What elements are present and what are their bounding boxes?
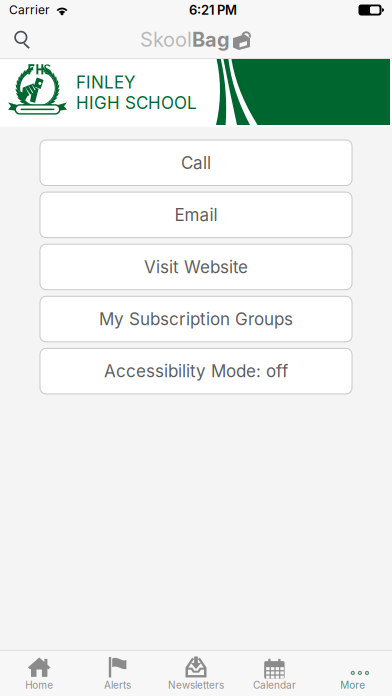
button[interactable]: Visit Website [40, 244, 352, 290]
staticText: Accessibility Mode: off [104, 361, 288, 381]
staticText: Newsletters [168, 679, 224, 691]
button[interactable]: Email [40, 192, 352, 238]
button[interactable]: More [314, 651, 392, 696]
staticText: Call [181, 152, 211, 173]
button[interactable]: Accessibility Mode: off [40, 348, 352, 394]
staticText: Skool [140, 27, 192, 52]
staticText: Alerts [104, 679, 131, 691]
staticText: Calendar [253, 679, 296, 691]
staticText: Visit Website [144, 257, 248, 277]
button[interactable]: Calendar [235, 651, 314, 696]
staticText: 6:21 PM [189, 2, 237, 18]
staticText: Email [174, 205, 217, 225]
staticText: Carrier [9, 3, 50, 17]
staticText: Home [25, 679, 53, 691]
button[interactable]: My Subscription Groups [40, 296, 352, 342]
button[interactable]: Search [0, 20, 44, 59]
staticText: HIGH SCHOOL [76, 93, 197, 113]
staticText: My Subscription Groups [99, 309, 293, 329]
button[interactable]: Newsletters [157, 651, 235, 696]
staticText: Bag [192, 27, 230, 52]
staticText: FINLEY [76, 72, 136, 93]
button[interactable]: Alerts [78, 651, 157, 696]
staticText: More [340, 679, 365, 691]
button[interactable]: Call [40, 140, 352, 185]
button[interactable]: Home [0, 651, 78, 696]
